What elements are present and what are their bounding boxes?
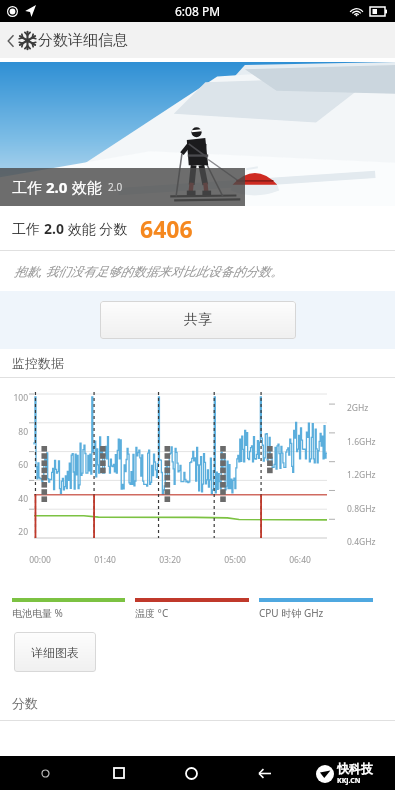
- staticText: 2.0: [44, 219, 64, 238]
- staticText: 监控数据: [12, 355, 64, 371]
- staticText: 快科技: [337, 761, 373, 776]
- button[interactable]: Back: [6, 31, 37, 50]
- staticText: 0.8GHz: [347, 503, 393, 515]
- staticText: 80: [0, 426, 28, 438]
- staticText: 效能: [68, 177, 102, 197]
- button[interactable]: 工作: [0, 62, 395, 206]
- staticText: 20: [0, 526, 28, 538]
- staticText: 2.0: [46, 177, 68, 197]
- staticText: 工作: [12, 177, 46, 197]
- button[interactable]: Recents: [82, 756, 155, 790]
- button[interactable]: 详细图表: [14, 632, 96, 672]
- button[interactable]: Back: [228, 756, 301, 790]
- staticText: 1.6GHz: [347, 436, 393, 448]
- staticText: 6:08 PM: [175, 3, 221, 19]
- staticText: 抱歉, 我们没有足够的数据来对比此设备的分数。: [14, 263, 283, 280]
- staticText: KKJ.CN: [337, 776, 361, 786]
- button[interactable]: 共享: [100, 301, 296, 339]
- staticText: 00:00: [20, 554, 60, 566]
- staticText: 0.4GHz: [347, 536, 393, 548]
- staticText: 详细图表: [31, 645, 79, 660]
- staticText: CPU 时钟 GHz: [259, 606, 324, 620]
- button[interactable]: Menu: [8, 756, 82, 790]
- staticText: 分数: [12, 695, 38, 711]
- staticText: 1.2GHz: [347, 469, 393, 481]
- button[interactable]: Home: [155, 756, 228, 790]
- staticText: 100: [0, 392, 28, 404]
- staticText: 共享: [184, 311, 212, 329]
- staticText: 2GHz: [347, 402, 393, 414]
- staticText: 分数详细信息: [38, 31, 128, 50]
- staticText: 工作: [12, 219, 44, 238]
- staticText: 2.0: [108, 180, 123, 194]
- staticText: 03:20: [150, 554, 190, 566]
- staticText: 效能 分数: [64, 219, 128, 238]
- staticText: 05:00: [215, 554, 255, 566]
- staticText: 电池电量 %: [12, 606, 63, 620]
- staticText: 温度 °C: [135, 606, 169, 620]
- staticText: 6406: [140, 213, 193, 244]
- staticText: 01:40: [85, 554, 125, 566]
- staticText: 06:40: [280, 554, 320, 566]
- staticText: 40: [0, 493, 28, 505]
- staticText: 60: [0, 459, 28, 471]
